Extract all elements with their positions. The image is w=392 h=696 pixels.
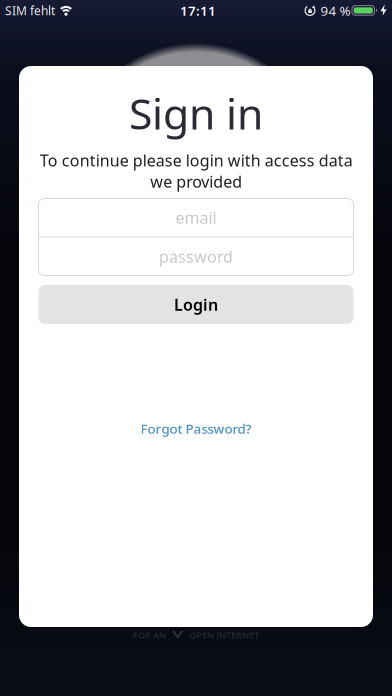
button[interactable]: password <box>38 237 353 275</box>
button[interactable]: Forgot Password? <box>140 420 251 437</box>
staticText: FOR AN <box>133 629 166 641</box>
staticText: 17:11 <box>180 2 216 19</box>
staticText: Login <box>174 294 218 315</box>
button[interactable]: email <box>38 198 353 236</box>
staticText: Sign in <box>129 85 263 141</box>
staticText: OPEN INTERNET <box>189 629 259 641</box>
button[interactable]: Login <box>38 285 353 324</box>
staticText: email <box>175 207 216 228</box>
staticText: To continue please login with access dat… <box>39 150 352 192</box>
staticText: Forgot Password? <box>140 420 251 437</box>
staticText: password <box>159 246 233 267</box>
staticText: SIM fehlt <box>5 2 55 18</box>
staticText: 94 % <box>320 2 350 19</box>
